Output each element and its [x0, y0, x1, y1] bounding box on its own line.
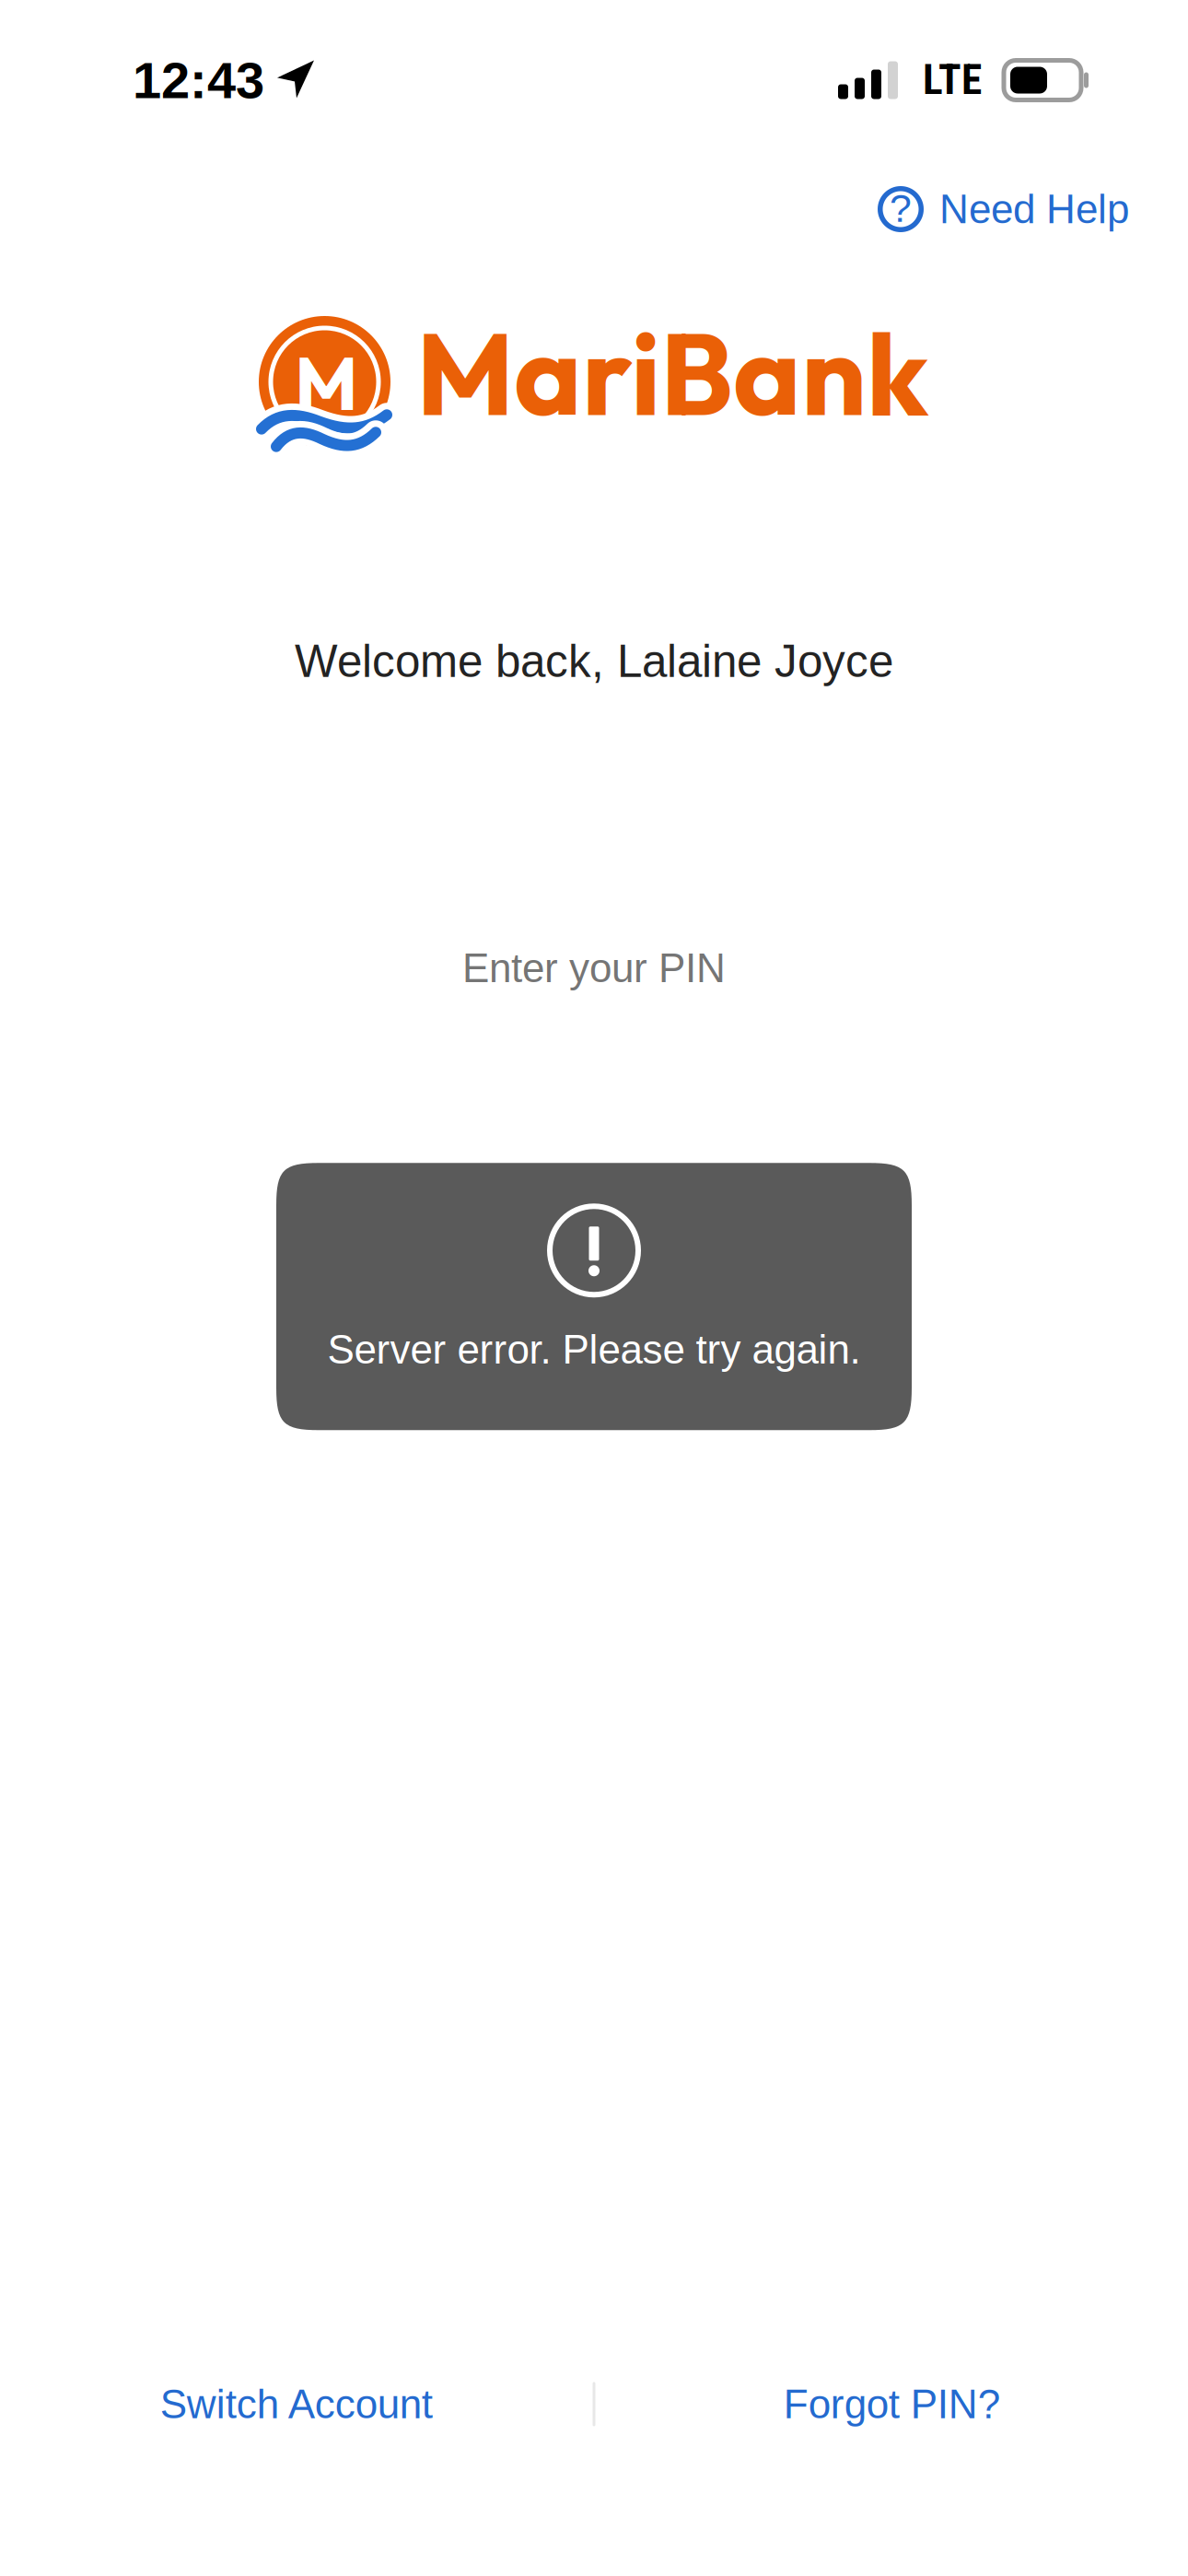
staticText: M	[295, 336, 358, 429]
staticText: Forgot PIN?	[784, 2381, 1000, 2427]
staticText: LTE	[923, 56, 982, 105]
staticText: Switch Account	[160, 2381, 433, 2427]
staticText: 12:43	[133, 51, 264, 109]
staticText: Need Help	[939, 186, 1129, 232]
staticText: ?	[890, 186, 912, 230]
button[interactable]: Forgot PIN?	[595, 2359, 1188, 2449]
staticText: MariBank	[416, 301, 929, 445]
staticText: Server error. Please try again.	[327, 1327, 861, 1372]
staticText: Welcome back, Lalaine Joyce	[295, 636, 893, 686]
staticText: Enter your PIN	[462, 945, 726, 991]
button[interactable]: ?	[878, 173, 1129, 245]
button[interactable]: Switch Account	[0, 2359, 593, 2449]
